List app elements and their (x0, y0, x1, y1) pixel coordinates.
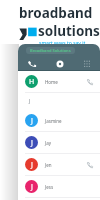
button[interactable]: Recents (46, 57, 73, 70)
staticText: broadband (19, 4, 93, 22)
staticText: Jess (45, 184, 54, 190)
staticText: Jasmine (45, 118, 62, 124)
button[interactable]: Calls (18, 57, 46, 70)
staticText: J (31, 182, 33, 192)
button[interactable]: Call Home (85, 77, 94, 86)
staticText: Jay (45, 140, 52, 146)
button[interactable]: Broadband Solutions (30, 48, 71, 53)
staticText: J (31, 116, 33, 126)
staticText: Broadband Solutions (30, 48, 71, 53)
button[interactable]: J (18, 110, 100, 131)
staticText: J (31, 160, 33, 170)
button[interactable]: Keypad (73, 57, 100, 70)
staticText: Jen (45, 162, 52, 168)
staticText: J (31, 138, 33, 148)
button[interactable]: J (18, 132, 100, 153)
staticText: Home (45, 79, 58, 85)
button[interactable]: J (18, 154, 100, 175)
button[interactable]: J (18, 176, 100, 197)
button[interactable]: H (18, 71, 100, 92)
staticText: solutions (38, 22, 100, 40)
button[interactable]: Call Jen (85, 160, 94, 169)
staticText: H (29, 77, 35, 87)
staticText: smart ways to say it (39, 40, 86, 44)
staticText: J (29, 98, 31, 105)
